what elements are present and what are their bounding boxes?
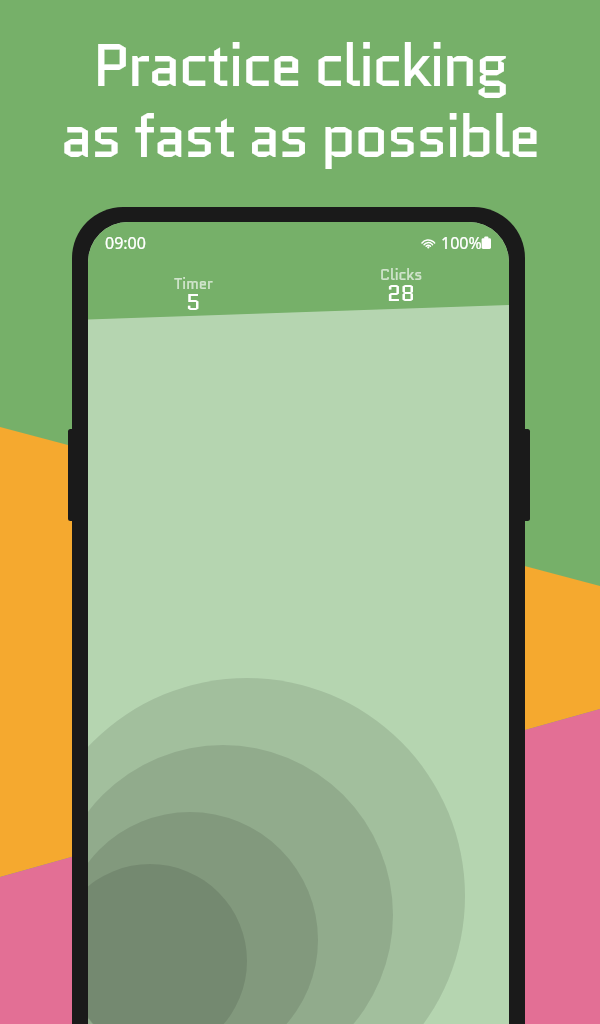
staticText: Timer: [174, 273, 213, 294]
staticText: 09:00: [105, 232, 146, 254]
staticText: 28: [387, 278, 416, 309]
button[interactable]: Timer: [148, 273, 238, 325]
staticText: 5: [186, 287, 201, 318]
staticText: Clicks: [380, 264, 423, 285]
staticText: Practice clicking as fast as possible: [0, 23, 600, 178]
button[interactable]: Clicks: [356, 264, 446, 316]
staticText: 100%: [441, 232, 482, 254]
